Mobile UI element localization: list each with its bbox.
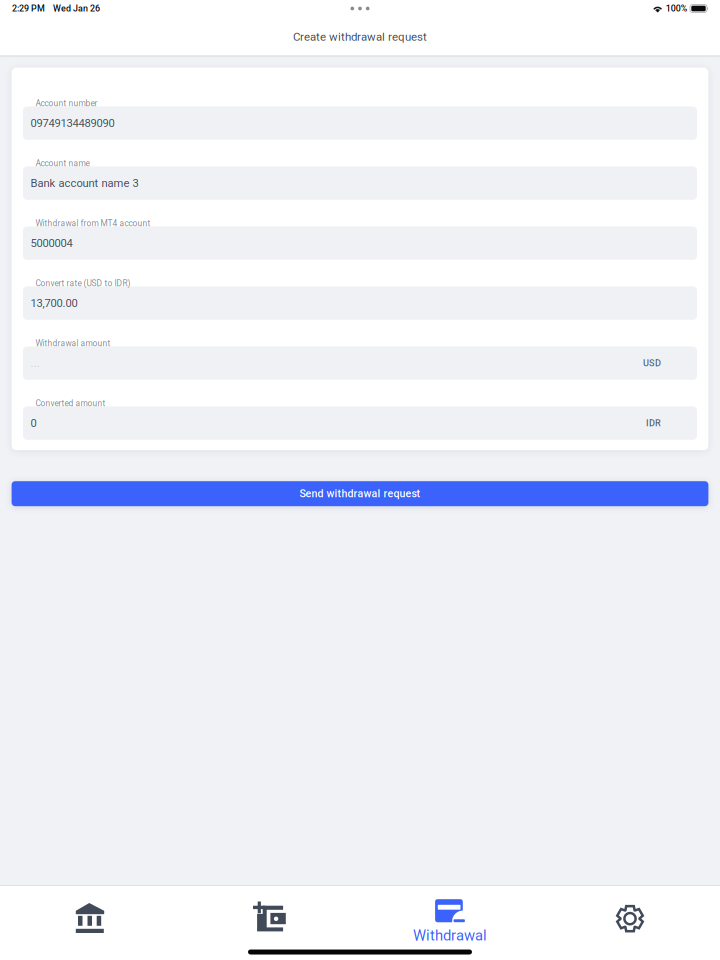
staticText: Convert rate (USD to IDR) [36, 278, 131, 288]
staticText: 2:29 PM [12, 3, 45, 14]
staticText: Create withdrawal request [293, 30, 427, 43]
staticText: 13,700.00 [30, 296, 77, 310]
staticText: 0 [30, 416, 36, 430]
staticText: Withdrawal amount [36, 338, 111, 348]
staticText: Withdrawal [413, 927, 487, 944]
staticText: IDR [646, 418, 661, 428]
staticText: Send withdrawal request [299, 487, 420, 500]
staticText: ... [30, 356, 39, 370]
staticText: Wed Jan 26 [53, 3, 100, 14]
staticText: Withdrawal from MT4 account [36, 218, 151, 228]
button[interactable]: Bank accounts [0, 886, 180, 944]
button[interactable]: Withdrawal [360, 886, 540, 944]
button[interactable]: Settings [540, 886, 720, 944]
staticText: USD [643, 358, 661, 368]
staticText: Account number [36, 98, 98, 108]
staticText: Bank account name 3 [30, 176, 138, 190]
staticText: 5000004 [30, 236, 72, 250]
staticText: Converted amount [36, 398, 106, 408]
button[interactable]: Deposit [180, 886, 360, 944]
staticText: 09749134489090 [30, 116, 114, 130]
staticText: Account name [36, 158, 90, 168]
staticText: 100% [666, 3, 688, 14]
button[interactable]: Send withdrawal request [12, 481, 708, 506]
